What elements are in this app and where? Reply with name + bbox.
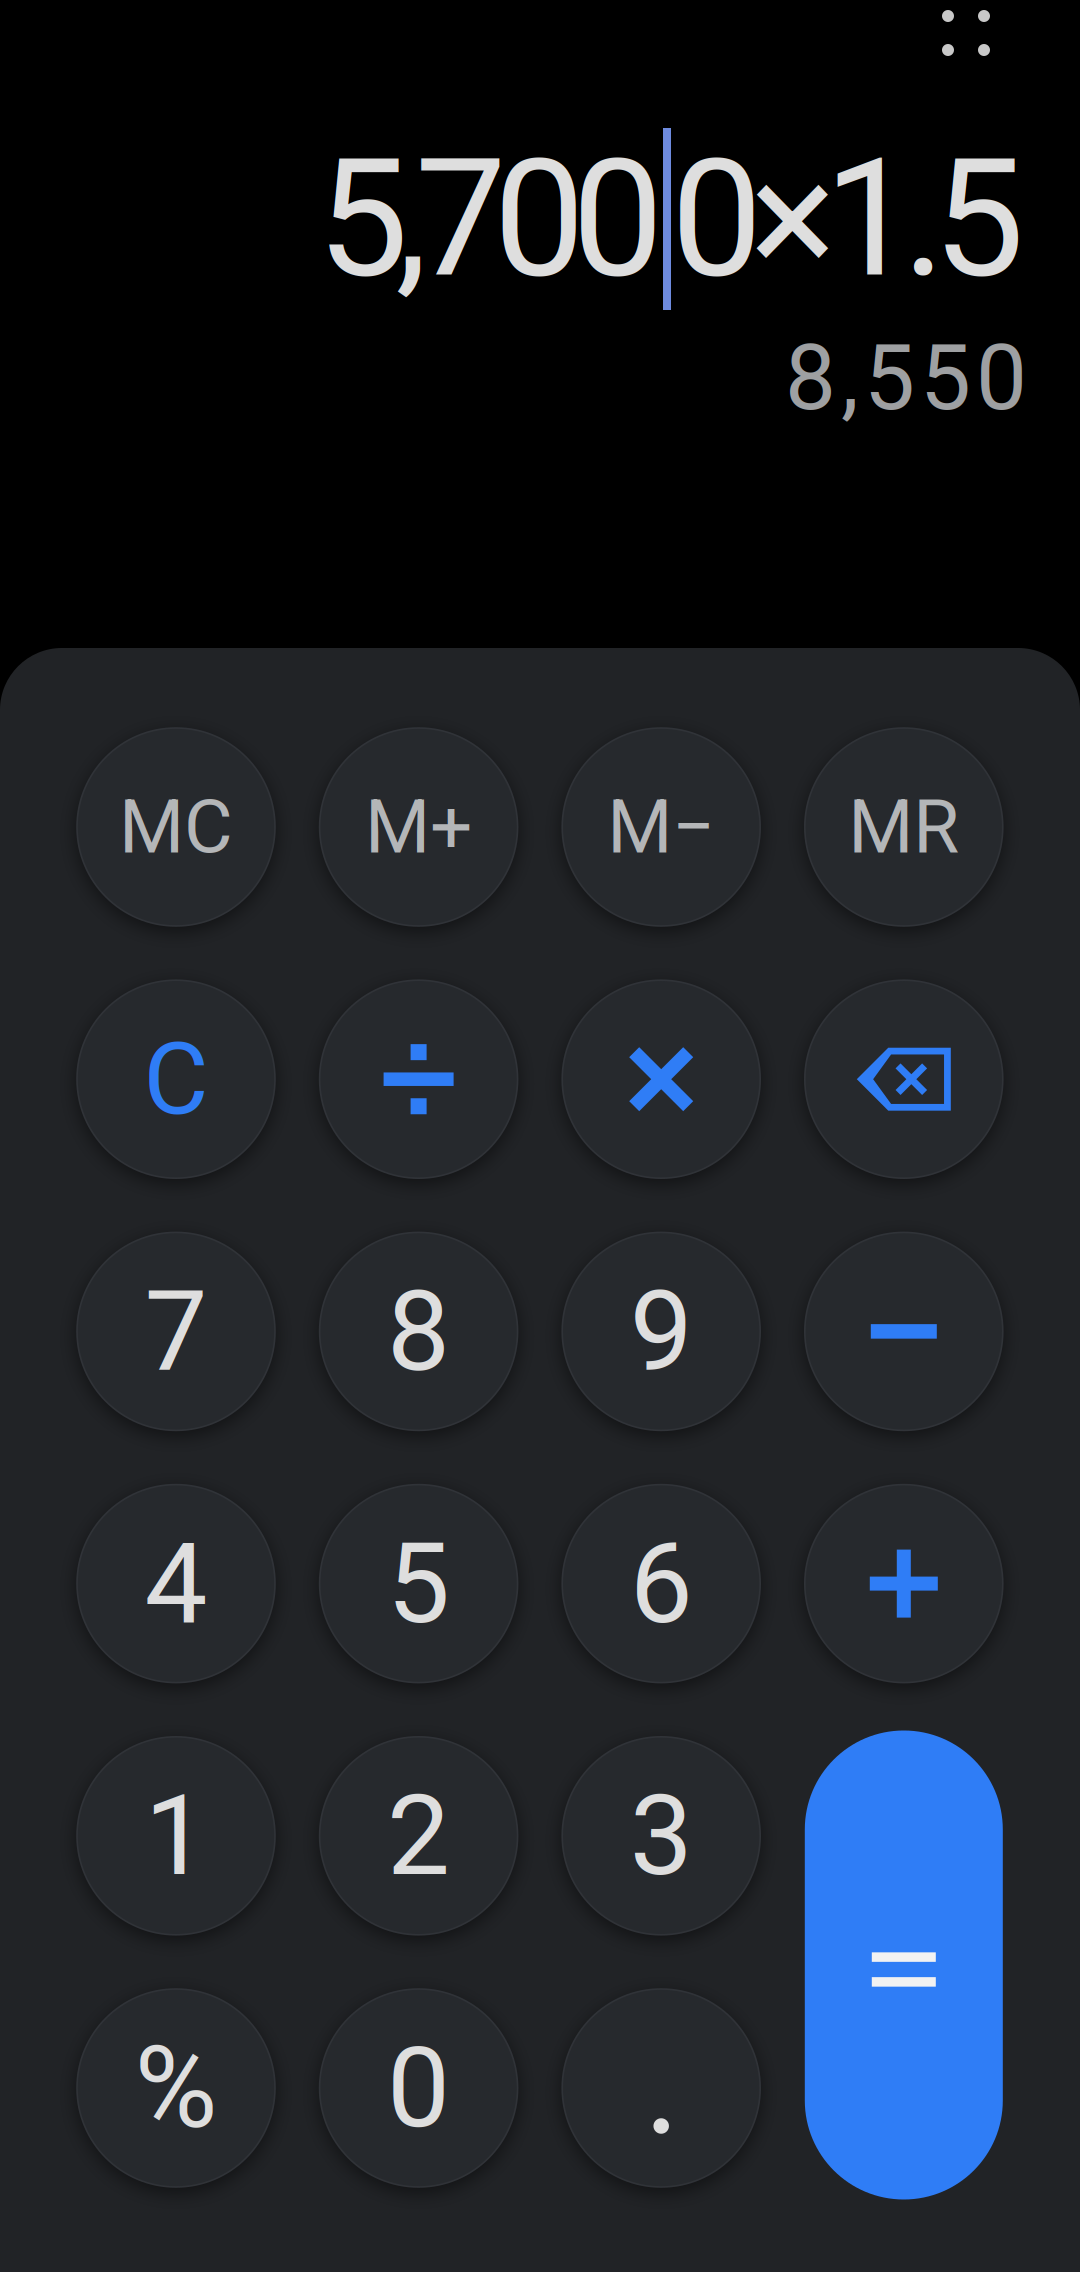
button[interactable]: 2 bbox=[320, 1737, 518, 1935]
staticText: 0 bbox=[387, 2022, 450, 2154]
button[interactable]: MR bbox=[805, 728, 1003, 926]
button[interactable]: M− bbox=[562, 728, 760, 926]
staticText: 9 bbox=[630, 1266, 693, 1397]
staticText: M+ bbox=[365, 783, 472, 871]
staticText: 4 bbox=[144, 1518, 207, 1649]
button[interactable]: M+ bbox=[320, 728, 518, 926]
staticText: % bbox=[134, 2022, 217, 2154]
button[interactable]: 4 bbox=[77, 1485, 275, 1683]
staticText: 5,700 bbox=[317, 124, 663, 314]
staticText: C bbox=[143, 1021, 208, 1138]
staticText: 7 bbox=[144, 1266, 207, 1397]
button[interactable]: MC bbox=[77, 728, 275, 926]
button[interactable]: C bbox=[77, 980, 275, 1178]
button[interactable]: 6 bbox=[562, 1485, 760, 1683]
button[interactable]: % bbox=[77, 1989, 275, 2187]
button[interactable]: 9 bbox=[562, 1232, 760, 1430]
button[interactable] bbox=[562, 1989, 760, 2187]
button[interactable]: 5 bbox=[320, 1485, 518, 1683]
button[interactable]: Minus bbox=[805, 1232, 1003, 1430]
staticText: 6 bbox=[630, 1518, 693, 1649]
button[interactable]: Divide bbox=[320, 980, 518, 1178]
button[interactable]: More options bbox=[918, 0, 1014, 66]
button[interactable]: Plus bbox=[805, 1485, 1003, 1683]
button[interactable]: 7 bbox=[77, 1232, 275, 1430]
button[interactable]: Multiply bbox=[562, 980, 760, 1178]
button[interactable]: Equals bbox=[805, 1730, 1003, 2199]
button[interactable]: 1 bbox=[77, 1737, 275, 1935]
staticText: 2 bbox=[387, 1770, 450, 1901]
staticText: 3 bbox=[630, 1770, 693, 1901]
staticText: 5 bbox=[387, 1518, 450, 1649]
button[interactable]: 3 bbox=[562, 1737, 760, 1935]
staticText: 8,550 bbox=[785, 325, 1027, 431]
staticText: 0×1.5 bbox=[671, 124, 1024, 314]
staticText: 1 bbox=[144, 1770, 207, 1901]
staticText: MC bbox=[119, 783, 233, 871]
button[interactable]: 0 bbox=[320, 1989, 518, 2187]
staticText: MR bbox=[848, 783, 959, 871]
staticText: M− bbox=[607, 783, 715, 871]
button[interactable]: Backspace bbox=[805, 980, 1003, 1178]
staticText: 8 bbox=[387, 1266, 450, 1397]
button[interactable]: 8 bbox=[320, 1232, 518, 1430]
